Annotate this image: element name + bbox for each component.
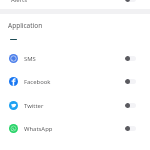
button[interactable]: SMS [0, 47, 150, 70]
button[interactable]: Twitter [0, 94, 150, 117]
other: Toggle SMS notifications [125, 56, 136, 61]
button[interactable]: Facebook [0, 70, 150, 93]
other: Toggle Twitter notifications [125, 103, 136, 108]
staticText: Alerts [11, 0, 27, 4]
staticText: Application [8, 21, 43, 30]
other: Toggle Facebook notifications [125, 79, 136, 84]
other: Toggle WhatsApp notifications [125, 126, 136, 131]
staticText: Facebook [24, 78, 51, 86]
staticText: SMS [24, 55, 36, 63]
button[interactable]: Alerts [0, 0, 150, 9]
staticText: WhatsApp [24, 125, 53, 133]
staticText: Twitter [24, 102, 44, 110]
button[interactable]: WhatsApp [0, 117, 150, 140]
